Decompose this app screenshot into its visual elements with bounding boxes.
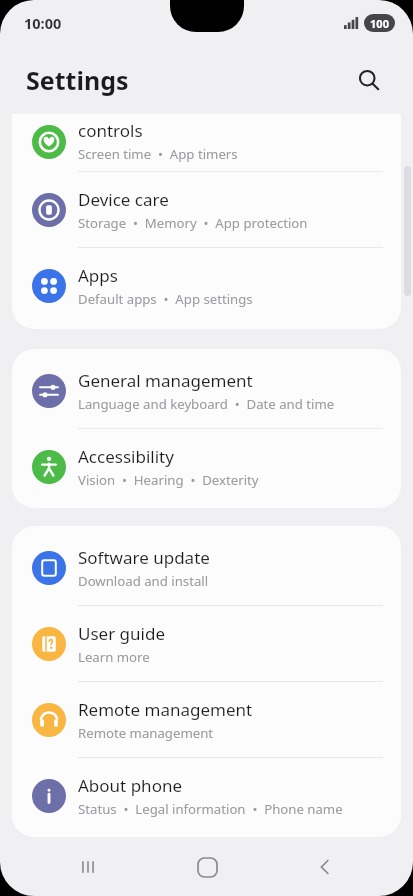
staticText: Status • Legal information • Phone name xyxy=(78,800,343,818)
button[interactable]: Search xyxy=(347,58,391,102)
staticText: controls xyxy=(78,119,143,142)
button[interactable]: Device care xyxy=(12,172,401,247)
button[interactable]: General management xyxy=(12,353,401,428)
staticText: Storage • Memory • App protection xyxy=(78,214,308,232)
staticText: Apps xyxy=(78,264,118,287)
staticText: Learn more xyxy=(78,648,150,666)
button[interactable]: Software update xyxy=(12,530,401,605)
button[interactable]: Back xyxy=(295,838,355,896)
staticText: Accessibility xyxy=(78,445,174,468)
staticText: General management xyxy=(78,369,253,392)
staticText: Vision • Hearing • Dexterity xyxy=(78,471,259,489)
staticText: 10:00 xyxy=(24,13,62,33)
staticText: Remote management xyxy=(78,724,214,742)
button[interactable]: User guide xyxy=(12,606,401,681)
staticText: User guide xyxy=(78,622,165,645)
button[interactable]: About phone xyxy=(12,758,401,833)
staticText: 100 xyxy=(370,16,389,31)
staticText: Device care xyxy=(78,188,169,211)
button[interactable]: Recents xyxy=(58,838,118,896)
button[interactable]: controls xyxy=(12,114,401,171)
button[interactable]: Accessibility xyxy=(12,429,401,504)
staticText: Remote management xyxy=(78,698,253,721)
button[interactable]: Apps xyxy=(12,248,401,323)
staticText: Settings xyxy=(26,63,129,97)
staticText: Screen time • App timers xyxy=(78,145,238,163)
staticText: Software update xyxy=(78,546,210,569)
staticText: About phone xyxy=(78,774,183,797)
staticText: Default apps • App settings xyxy=(78,290,253,308)
button[interactable]: Remote management xyxy=(12,682,401,757)
button[interactable]: Home xyxy=(177,838,237,896)
staticText: Download and install xyxy=(78,572,209,590)
staticText: Language and keyboard • Date and time xyxy=(78,395,335,413)
